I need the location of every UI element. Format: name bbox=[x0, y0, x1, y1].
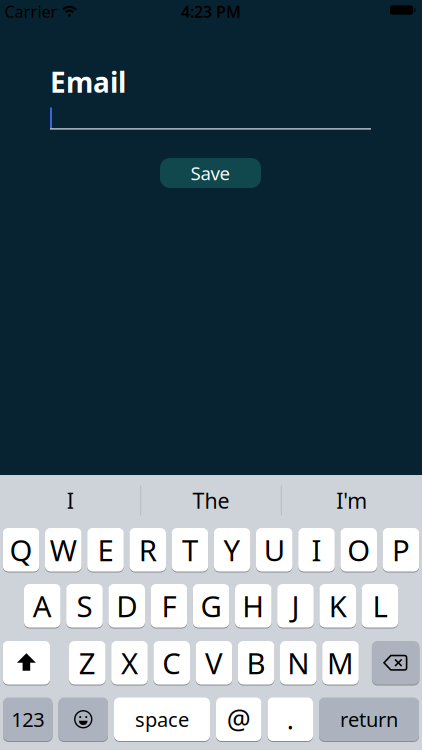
button[interactable]: . bbox=[267, 697, 313, 741]
staticText: S bbox=[76, 586, 92, 625]
staticText: O bbox=[347, 530, 370, 569]
button[interactable]: Save bbox=[160, 158, 261, 188]
button[interactable]: L bbox=[362, 583, 398, 628]
staticText: N bbox=[287, 643, 309, 682]
staticText: C bbox=[162, 643, 181, 682]
staticText: K bbox=[329, 586, 347, 625]
staticText: space bbox=[135, 706, 189, 733]
button[interactable]: A bbox=[24, 583, 61, 628]
button[interactable]: I bbox=[1, 477, 139, 523]
staticText: U bbox=[264, 530, 285, 569]
button[interactable]: return bbox=[319, 697, 419, 741]
staticText: P bbox=[392, 530, 410, 569]
button[interactable]: O bbox=[340, 527, 377, 572]
staticText: The bbox=[192, 486, 229, 515]
button[interactable]: S bbox=[66, 583, 103, 628]
button[interactable]: Q bbox=[3, 527, 39, 572]
staticText: Q bbox=[10, 530, 33, 569]
staticText: L bbox=[372, 586, 387, 625]
button[interactable]: @ bbox=[216, 697, 261, 741]
button[interactable] bbox=[372, 640, 419, 685]
button[interactable]: 123 bbox=[3, 697, 52, 741]
staticText: G bbox=[201, 586, 222, 625]
button[interactable]: P bbox=[383, 527, 419, 572]
staticText: B bbox=[247, 643, 266, 682]
button[interactable]: The bbox=[142, 477, 280, 523]
staticText: E bbox=[97, 530, 113, 569]
staticText: 4:23 PM bbox=[181, 1, 241, 22]
staticText: I'm bbox=[336, 486, 367, 515]
button[interactable]: X bbox=[111, 640, 148, 685]
staticText: R bbox=[139, 530, 157, 569]
button[interactable]: I bbox=[298, 527, 335, 572]
staticText: @ bbox=[227, 701, 251, 737]
button[interactable]: M bbox=[322, 640, 359, 685]
button[interactable]: J bbox=[277, 583, 314, 628]
button[interactable]: space bbox=[114, 697, 210, 741]
staticText: Email bbox=[50, 63, 126, 101]
button[interactable]: B bbox=[238, 640, 274, 685]
button[interactable] bbox=[3, 640, 50, 685]
button[interactable]: I'm bbox=[283, 477, 421, 523]
staticText: V bbox=[205, 643, 223, 682]
button[interactable]: Z bbox=[69, 640, 106, 685]
button[interactable] bbox=[58, 697, 108, 741]
staticText: X bbox=[121, 643, 138, 682]
staticText: M bbox=[327, 643, 354, 682]
button[interactable]: C bbox=[153, 640, 190, 685]
button[interactable]: E bbox=[87, 527, 124, 572]
button[interactable]: T bbox=[172, 527, 208, 572]
staticText: F bbox=[161, 586, 176, 625]
button[interactable]: N bbox=[280, 640, 317, 685]
staticText: 123 bbox=[11, 706, 44, 733]
staticText: Save bbox=[190, 161, 230, 185]
button[interactable]: V bbox=[196, 640, 232, 685]
staticText: return bbox=[340, 706, 398, 733]
staticText: A bbox=[33, 586, 52, 625]
staticText: Y bbox=[224, 530, 241, 569]
staticText: I bbox=[67, 486, 74, 515]
button[interactable] bbox=[50, 106, 371, 129]
staticText: D bbox=[116, 586, 137, 625]
staticText: H bbox=[242, 586, 264, 625]
button[interactable]: G bbox=[193, 583, 229, 628]
staticText: Z bbox=[79, 643, 96, 682]
staticText: Carrier bbox=[4, 1, 57, 22]
staticText: . bbox=[287, 701, 294, 737]
staticText: J bbox=[291, 586, 299, 625]
button[interactable]: F bbox=[151, 583, 187, 628]
button[interactable]: H bbox=[235, 583, 272, 628]
button[interactable]: K bbox=[319, 583, 356, 628]
button[interactable]: W bbox=[45, 527, 82, 572]
button[interactable]: Y bbox=[214, 527, 250, 572]
staticText: I bbox=[311, 530, 321, 569]
staticText: W bbox=[50, 530, 77, 569]
staticText: T bbox=[182, 530, 198, 569]
button[interactable]: U bbox=[256, 527, 293, 572]
button[interactable]: R bbox=[129, 527, 166, 572]
button[interactable]: D bbox=[108, 583, 145, 628]
